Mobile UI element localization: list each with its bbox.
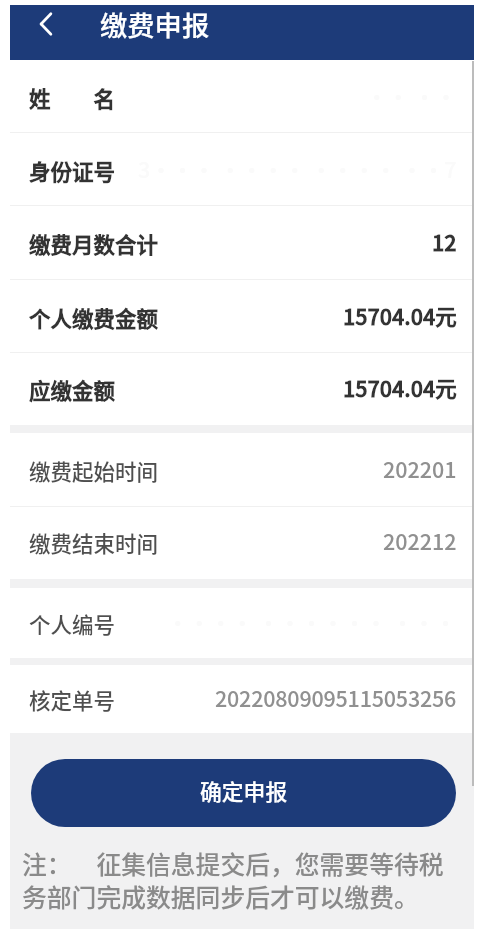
staticText: 应缴金额: [29, 374, 116, 405]
button[interactable]: 缴费月数合计: [10, 206, 474, 281]
staticText: 202201: [383, 453, 457, 484]
staticText: 15704.04元: [343, 372, 457, 403]
staticText: 个人缴费金额: [29, 302, 159, 333]
staticText: 注： 征集信息提交后，您需要等待税务部门完成数据同步后才可以缴费。: [22, 845, 464, 914]
staticText: 缴费申报: [100, 4, 210, 44]
button[interactable]: 核定单号: [10, 665, 474, 733]
staticText: 15704.04元: [343, 300, 457, 331]
button[interactable]: Back: [22, 0, 70, 48]
button[interactable]: 确定申报: [31, 759, 456, 827]
button[interactable]: 个人编号: [10, 588, 474, 658]
staticText: 个人编号: [29, 608, 116, 639]
staticText: 确定申报: [200, 775, 288, 807]
button[interactable]: 缴费起始时间: [10, 433, 474, 508]
staticText: 核定单号: [29, 684, 116, 715]
staticText: 12: [432, 226, 457, 257]
button[interactable]: 姓 名: [10, 60, 474, 134]
button[interactable]: 个人缴费金额: [10, 280, 474, 354]
button[interactable]: 缴费结束时间: [10, 507, 474, 578]
staticText: 202212: [383, 525, 457, 556]
staticText: 姓 名: [29, 82, 116, 113]
button[interactable]: 应缴金额: [10, 353, 474, 425]
staticText: 20220809095115053256: [215, 682, 457, 713]
button[interactable]: 身份证号: [10, 133, 474, 207]
staticText: 身份证号: [29, 155, 116, 186]
staticText: 缴费结束时间: [29, 527, 159, 558]
staticText: 缴费起始时间: [29, 455, 159, 486]
staticText: 缴费月数合计: [29, 228, 159, 259]
